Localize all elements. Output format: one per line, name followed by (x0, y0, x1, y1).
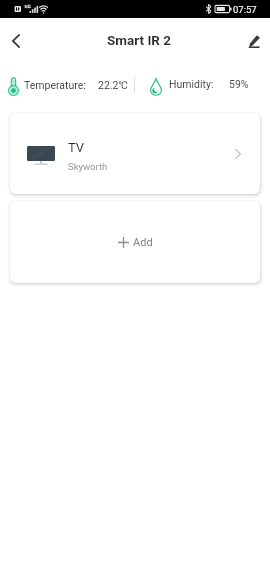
staticText: Humidity: (169, 78, 214, 90)
staticText: 59% (229, 78, 249, 90)
staticText: 22.2℃ (98, 79, 128, 91)
button[interactable]: Back (0, 18, 31, 62)
staticText: TV (68, 140, 85, 155)
staticText: Add (133, 236, 153, 249)
staticText: Smart IR 2 (107, 32, 172, 48)
button[interactable]: Add (10, 201, 260, 283)
staticText: Temperature: (24, 79, 86, 91)
button[interactable]: Edit (238, 18, 270, 62)
staticText: Skyworth (68, 161, 108, 172)
staticText: 07:57 (233, 4, 257, 15)
button[interactable]: TV (10, 113, 260, 194)
